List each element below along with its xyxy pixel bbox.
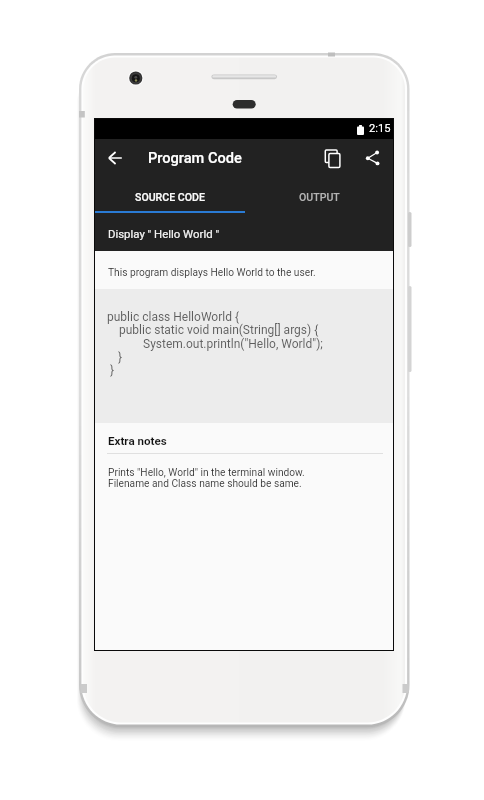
button[interactable]: OUTPUT <box>245 180 394 213</box>
staticText: SOURCE CODE <box>135 191 205 203</box>
staticText: public class HelloWorld { <box>107 310 239 324</box>
staticText: } <box>110 363 115 377</box>
staticText: public static void main(String[] args) { <box>119 323 319 337</box>
staticText: System.out.println("Hello, World"); <box>143 337 323 351</box>
button[interactable]: SOURCE CODE <box>95 180 244 213</box>
staticText: } <box>118 350 123 364</box>
staticText: Filename and Class name should be same. <box>108 478 302 490</box>
staticText: 2:15 <box>369 122 391 135</box>
button[interactable]: Share <box>360 145 390 175</box>
staticText: Display " Hello World " <box>108 227 220 240</box>
staticText: OUTPUT <box>299 191 340 203</box>
button[interactable]: Back <box>101 143 131 173</box>
staticText: Prints "Hello, World" in the terminal wi… <box>108 467 305 479</box>
staticText: Program Code <box>148 149 242 166</box>
staticText: This program displays Hello World to the… <box>108 267 316 279</box>
staticText: Extra notes <box>108 434 167 448</box>
button[interactable]: Copy <box>318 143 348 173</box>
